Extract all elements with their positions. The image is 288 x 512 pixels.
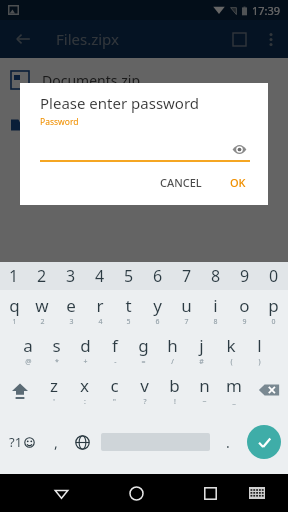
button[interactable]: g (129, 330, 158, 370)
staticText: = (141, 357, 146, 367)
staticText: ? (143, 397, 147, 407)
staticText: r (96, 294, 104, 317)
staticText: m (226, 374, 242, 397)
button[interactable]: Select all (222, 22, 256, 56)
staticText: CANCEL (160, 175, 202, 190)
staticText: / (171, 357, 174, 367)
staticText: # (199, 357, 204, 367)
button[interactable]: w (28, 290, 56, 330)
button[interactable]: h (158, 330, 187, 370)
button[interactable]: y (143, 290, 172, 330)
button[interactable]: 3 (56, 262, 85, 290)
button[interactable]: r (85, 290, 114, 330)
staticText: 8 (211, 265, 221, 287)
staticText: o (239, 294, 250, 317)
staticText: Documents.zip (42, 71, 141, 90)
button[interactable]: Done (240, 410, 288, 474)
button[interactable]: d (71, 330, 100, 370)
button[interactable]: q (0, 290, 28, 330)
button[interactable]: a (13, 330, 42, 370)
button[interactable]: Documents.zip (0, 58, 288, 102)
button[interactable]: 7 (172, 262, 201, 290)
button[interactable]: OK (222, 170, 254, 195)
button[interactable]: u (172, 290, 201, 330)
button[interactable]: Change language (68, 410, 96, 474)
button[interactable]: l (245, 330, 274, 370)
button[interactable]: f (100, 330, 129, 370)
staticText: Files.zipx (56, 29, 119, 49)
staticText: " (113, 397, 116, 407)
staticText: p (268, 294, 279, 317)
button[interactable]: o (230, 290, 259, 330)
button[interactable]: 4 (85, 262, 114, 290)
staticText: x (80, 374, 89, 397)
staticText: n (199, 374, 210, 397)
button[interactable]: 1 (0, 262, 28, 290)
button[interactable]: . (215, 410, 240, 474)
staticText: g (138, 334, 149, 357)
button[interactable]: Backspace (249, 370, 288, 410)
button[interactable]: Back (42, 474, 80, 512)
staticText: t (125, 294, 132, 317)
button[interactable]: v (129, 370, 159, 410)
button[interactable]: i (201, 290, 230, 330)
staticText: + (83, 357, 88, 367)
staticText: 8 (213, 317, 218, 327)
button[interactable] (0, 102, 288, 146)
button[interactable]: k (216, 330, 245, 370)
staticText: 5 (126, 317, 131, 327)
staticText: d (80, 334, 91, 357)
staticText: * (55, 357, 59, 367)
staticText: 6 (155, 317, 160, 327)
button[interactable]: b (159, 370, 189, 410)
button[interactable]: c (99, 370, 129, 410)
staticText: k (226, 334, 236, 357)
button[interactable]: 9 (230, 262, 259, 290)
button[interactable]: Back (6, 22, 40, 56)
button[interactable]: x (69, 370, 99, 410)
button[interactable]: More options (256, 24, 286, 54)
button[interactable]: z (39, 370, 69, 410)
staticText: 1 (12, 317, 17, 327)
button[interactable]: n (189, 370, 219, 410)
staticText: ( (230, 357, 233, 367)
button[interactable] (96, 410, 215, 474)
button[interactable]: m (219, 370, 249, 410)
staticText: ~ (202, 397, 207, 407)
button[interactable]: Recent apps (192, 474, 229, 512)
staticText: f (112, 334, 118, 357)
button[interactable]: e (56, 290, 85, 330)
button[interactable]: Home (118, 474, 155, 512)
staticText: y (153, 294, 162, 317)
button[interactable]: 5 (114, 262, 143, 290)
button[interactable]: t (114, 290, 143, 330)
staticText: z (50, 374, 58, 397)
staticText: u (181, 294, 192, 317)
staticText: ) (258, 357, 261, 367)
button[interactable]: s (42, 330, 71, 370)
staticText: ! (174, 397, 176, 407)
button[interactable]: CANCEL (152, 170, 210, 195)
staticText: , (54, 433, 58, 452)
staticText: v (140, 374, 149, 397)
staticText: @ (25, 357, 32, 367)
staticText: 7 (182, 265, 192, 287)
button[interactable]: Shift (0, 370, 39, 410)
staticText: 4 (98, 317, 103, 327)
button[interactable]: Switch keyboard (238, 474, 275, 512)
staticText: l (257, 334, 262, 357)
button[interactable]: p (259, 290, 288, 330)
button[interactable]: 0 (259, 262, 288, 290)
staticText: ?1 (9, 433, 23, 451)
staticText: j (199, 334, 204, 357)
staticText: c (110, 374, 119, 397)
button[interactable]: Show password (228, 138, 250, 160)
button[interactable]: 2 (28, 262, 56, 290)
staticText: OK (230, 175, 246, 190)
button[interactable]: j (187, 330, 216, 370)
button[interactable]: 6 (143, 262, 172, 290)
button[interactable]: , (43, 410, 68, 474)
staticText: e (66, 294, 76, 317)
button[interactable]: 8 (201, 262, 230, 290)
button[interactable]: Symbols and emoji (0, 410, 43, 474)
